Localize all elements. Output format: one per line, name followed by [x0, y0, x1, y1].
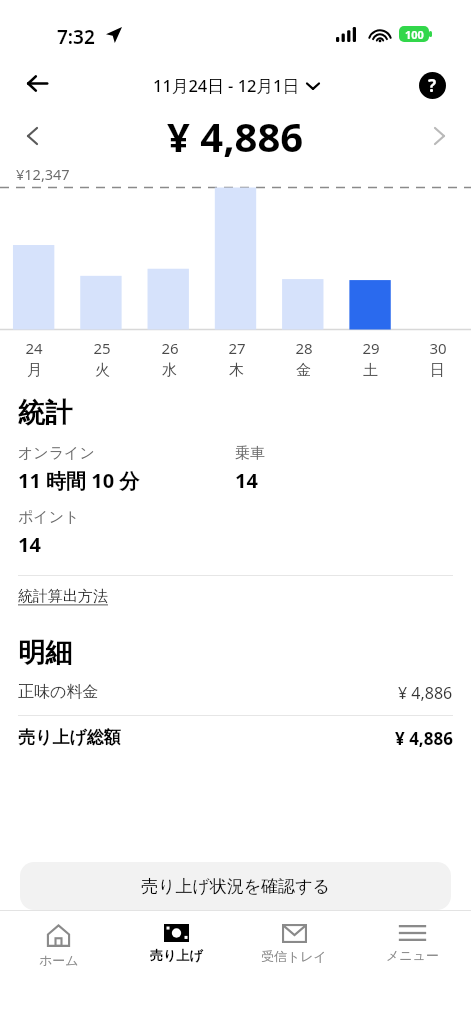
staticText: 29	[362, 338, 380, 358]
staticText: 売り上げ	[150, 947, 203, 963]
staticText: 11 時間 10 分	[18, 467, 140, 494]
button[interactable]: 受信トレイ	[235, 911, 353, 964]
button[interactable]: 11月24日 - 12月1日	[153, 74, 319, 97]
staticText: 乗車	[235, 444, 265, 463]
staticText: 明細	[18, 636, 72, 670]
button[interactable]: Next week	[421, 118, 457, 154]
button[interactable]: ホーム	[0, 911, 117, 968]
staticText: 受信トレイ	[261, 948, 327, 964]
staticText: 30	[429, 338, 447, 358]
button[interactable]: Previous week	[14, 118, 50, 154]
staticText: ¥ 4,886	[398, 682, 453, 704]
button[interactable]: 売り上げ	[117, 911, 235, 963]
staticText: 水	[162, 361, 177, 380]
staticText: 25	[93, 338, 111, 358]
staticText: 金	[296, 361, 311, 380]
staticText: 7:32	[57, 24, 95, 50]
button[interactable]: メニュー	[353, 911, 471, 963]
staticText: 27	[228, 338, 246, 358]
staticText: 統計	[18, 396, 72, 430]
staticText: 28	[295, 338, 313, 358]
staticText: 木	[229, 361, 244, 380]
button[interactable]: 正味の料金	[18, 682, 453, 704]
staticText: 11月24日 - 12月1日	[153, 74, 299, 97]
button[interactable]: 売り上げ総額	[18, 727, 453, 750]
button[interactable]: 売り上げ状況を確認する	[20, 862, 451, 910]
staticText: 日	[430, 361, 445, 380]
staticText: 14	[18, 531, 41, 558]
staticText: 正味の料金	[18, 682, 99, 702]
staticText: 売り上げ総額	[18, 727, 121, 748]
staticText: 売り上げ状況を確認する	[141, 876, 330, 897]
staticText: メニュー	[386, 947, 439, 963]
staticText: 火	[95, 361, 110, 380]
staticText: ホーム	[39, 952, 79, 968]
staticText: 26	[161, 338, 179, 358]
staticText: オンライン	[18, 444, 95, 463]
staticText: ¥ 4,886	[167, 109, 304, 163]
staticText: ポイント	[18, 508, 80, 527]
staticText: 土	[363, 361, 378, 380]
staticText: ¥ 4,886	[395, 727, 453, 750]
button[interactable]: 統計算出方法	[18, 587, 108, 606]
staticText: ¥12,347	[16, 164, 70, 184]
button[interactable]: Help	[415, 68, 449, 102]
button[interactable]: Back	[16, 62, 58, 104]
staticText: 24	[25, 338, 43, 358]
staticText: ?	[428, 74, 437, 97]
staticText: 月	[27, 361, 42, 380]
staticText: 100	[405, 27, 424, 42]
staticText: 14	[235, 467, 258, 494]
staticText: 統計算出方法	[18, 587, 108, 606]
